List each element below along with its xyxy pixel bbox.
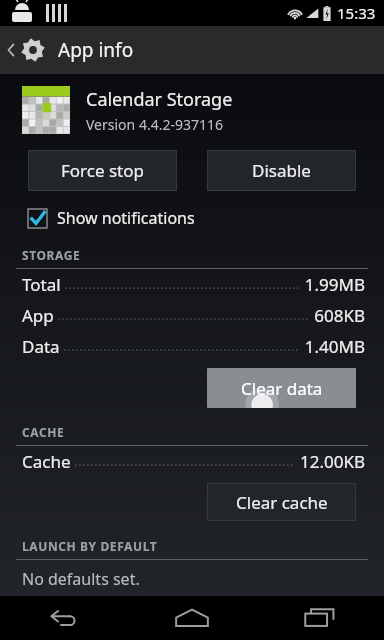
staticText: LAUNCH BY DEFAULT — [22, 538, 158, 554]
staticText: App — [22, 304, 54, 327]
staticText: 1.40MB — [304, 335, 365, 358]
button[interactable]: Show notifications — [28, 205, 205, 231]
button[interactable]: Disable — [207, 150, 356, 191]
button[interactable]: Clear data — [207, 368, 356, 408]
staticText: 12.00KB — [299, 450, 365, 473]
staticText: Calendar Storage — [86, 87, 233, 112]
staticText: Show notifications — [57, 207, 195, 229]
staticText: STORAGE — [22, 247, 81, 263]
staticText: Clear data — [241, 377, 323, 400]
staticText: App info — [58, 37, 134, 63]
staticText: Cache — [22, 450, 71, 473]
button[interactable]: Total — [0, 269, 384, 300]
button[interactable]: Recent apps — [256, 596, 384, 640]
staticText: Force stop — [61, 159, 144, 182]
button[interactable]: Back — [0, 596, 128, 640]
button[interactable]: Cache — [0, 446, 384, 477]
button[interactable]: Data — [0, 331, 384, 362]
staticText: Data — [22, 335, 60, 358]
staticText: Total — [22, 273, 61, 296]
button[interactable]: Clear cache — [207, 483, 356, 521]
staticText: 15:33 — [337, 3, 376, 23]
staticText: Clear cache — [236, 491, 328, 514]
staticText: 608KB — [314, 304, 365, 327]
button[interactable]: Home — [128, 596, 256, 640]
staticText: CACHE — [22, 424, 65, 440]
button[interactable]: App — [0, 300, 384, 331]
staticText: Disable — [252, 159, 311, 182]
staticText: 1.99MB — [304, 273, 365, 296]
button[interactable]: Force stop — [28, 150, 177, 191]
staticText: Version 4.4.2-937116 — [86, 115, 223, 134]
staticText: No defaults set. — [22, 568, 140, 590]
button[interactable]: Navigate up — [0, 26, 52, 74]
